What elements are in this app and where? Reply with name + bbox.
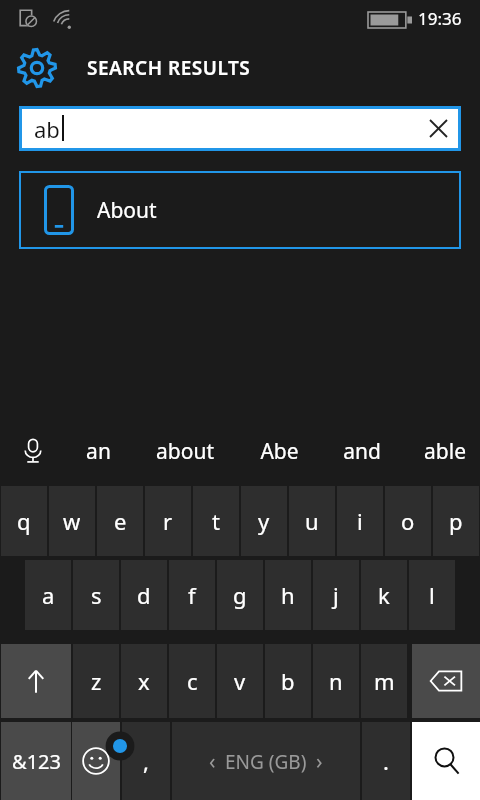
button[interactable]: s [73,560,119,630]
staticText: 19:36 [418,7,462,30]
button[interactable]: v [217,644,263,718]
button[interactable]: ‹ [172,722,360,800]
button[interactable]: a [25,560,71,630]
button[interactable]: Search [412,722,480,800]
button[interactable]: about [141,420,229,482]
button[interactable]: l [409,560,455,630]
staticText: u [305,506,319,536]
button[interactable]: . [362,722,410,800]
staticText: v [234,666,246,696]
button[interactable]: u [289,486,335,556]
button[interactable]: b [265,644,311,718]
staticText: SEARCH RESULTS [87,55,251,81]
button[interactable]: k [361,560,407,630]
button[interactable]: ab [22,109,458,148]
button[interactable]: j [313,560,359,630]
staticText: x [138,666,150,696]
button[interactable]: o [385,486,431,556]
staticText: i [357,506,363,536]
staticText: an [86,437,111,466]
staticText: f [188,580,196,610]
button[interactable]: Emoji [72,722,120,800]
staticText: ‹ [209,747,216,776]
button[interactable]: r [145,486,191,556]
button[interactable]: d [121,560,167,630]
button[interactable]: z [73,644,119,718]
button[interactable]: q [1,486,47,556]
button[interactable]: and [318,420,406,482]
button[interactable]: , [122,722,170,800]
button[interactable]: w [49,486,95,556]
staticText: k [378,580,390,610]
staticText: l [429,580,435,610]
staticText: t [212,506,220,536]
button[interactable]: i [337,486,383,556]
button[interactable]: Settings [14,45,60,91]
staticText: a [42,580,55,610]
button[interactable]: &123 [1,722,71,800]
staticText: o [401,506,415,536]
staticText: ENG (GB) [225,749,307,775]
staticText: able [424,437,466,466]
staticText: z [91,666,102,696]
button[interactable]: p [433,486,479,556]
button[interactable]: h [265,560,311,630]
staticText: w [63,506,81,536]
staticText: d [137,580,151,610]
staticText: . [383,746,389,776]
button[interactable]: Clear [418,109,458,148]
button[interactable]: y [241,486,287,556]
button[interactable]: e [97,486,143,556]
button[interactable]: Voice input [10,420,56,482]
staticText: &123 [12,748,61,775]
button[interactable]: About [21,173,459,247]
staticText: ab [34,114,60,144]
staticText: n [329,666,343,696]
staticText: about [156,437,214,466]
staticText: j [333,580,339,610]
staticText: r [163,506,173,536]
staticText: › [316,747,323,776]
button[interactable]: Shift [1,644,71,718]
staticText: p [449,506,463,536]
staticText: m [374,666,395,696]
button[interactable]: Backspace [412,644,480,718]
staticText: h [281,580,295,610]
button[interactable]: t [193,486,239,556]
staticText: , [143,746,149,776]
staticText: Abe [260,437,299,466]
button[interactable]: f [169,560,215,630]
staticText: s [91,580,102,610]
button[interactable]: m [361,644,407,718]
staticText: About [97,196,157,225]
button[interactable]: n [313,644,359,718]
staticText: and [343,437,381,466]
staticText: q [17,506,31,536]
staticText: g [233,580,247,610]
button[interactable]: able [401,420,480,482]
staticText: e [114,506,127,536]
staticText: b [281,666,295,696]
staticText: y [258,506,270,536]
staticText: c [187,666,198,696]
button[interactable]: g [217,560,263,630]
button[interactable]: an [54,420,142,482]
button[interactable]: Abe [235,420,323,482]
button[interactable]: x [121,644,167,718]
button[interactable]: c [169,644,215,718]
